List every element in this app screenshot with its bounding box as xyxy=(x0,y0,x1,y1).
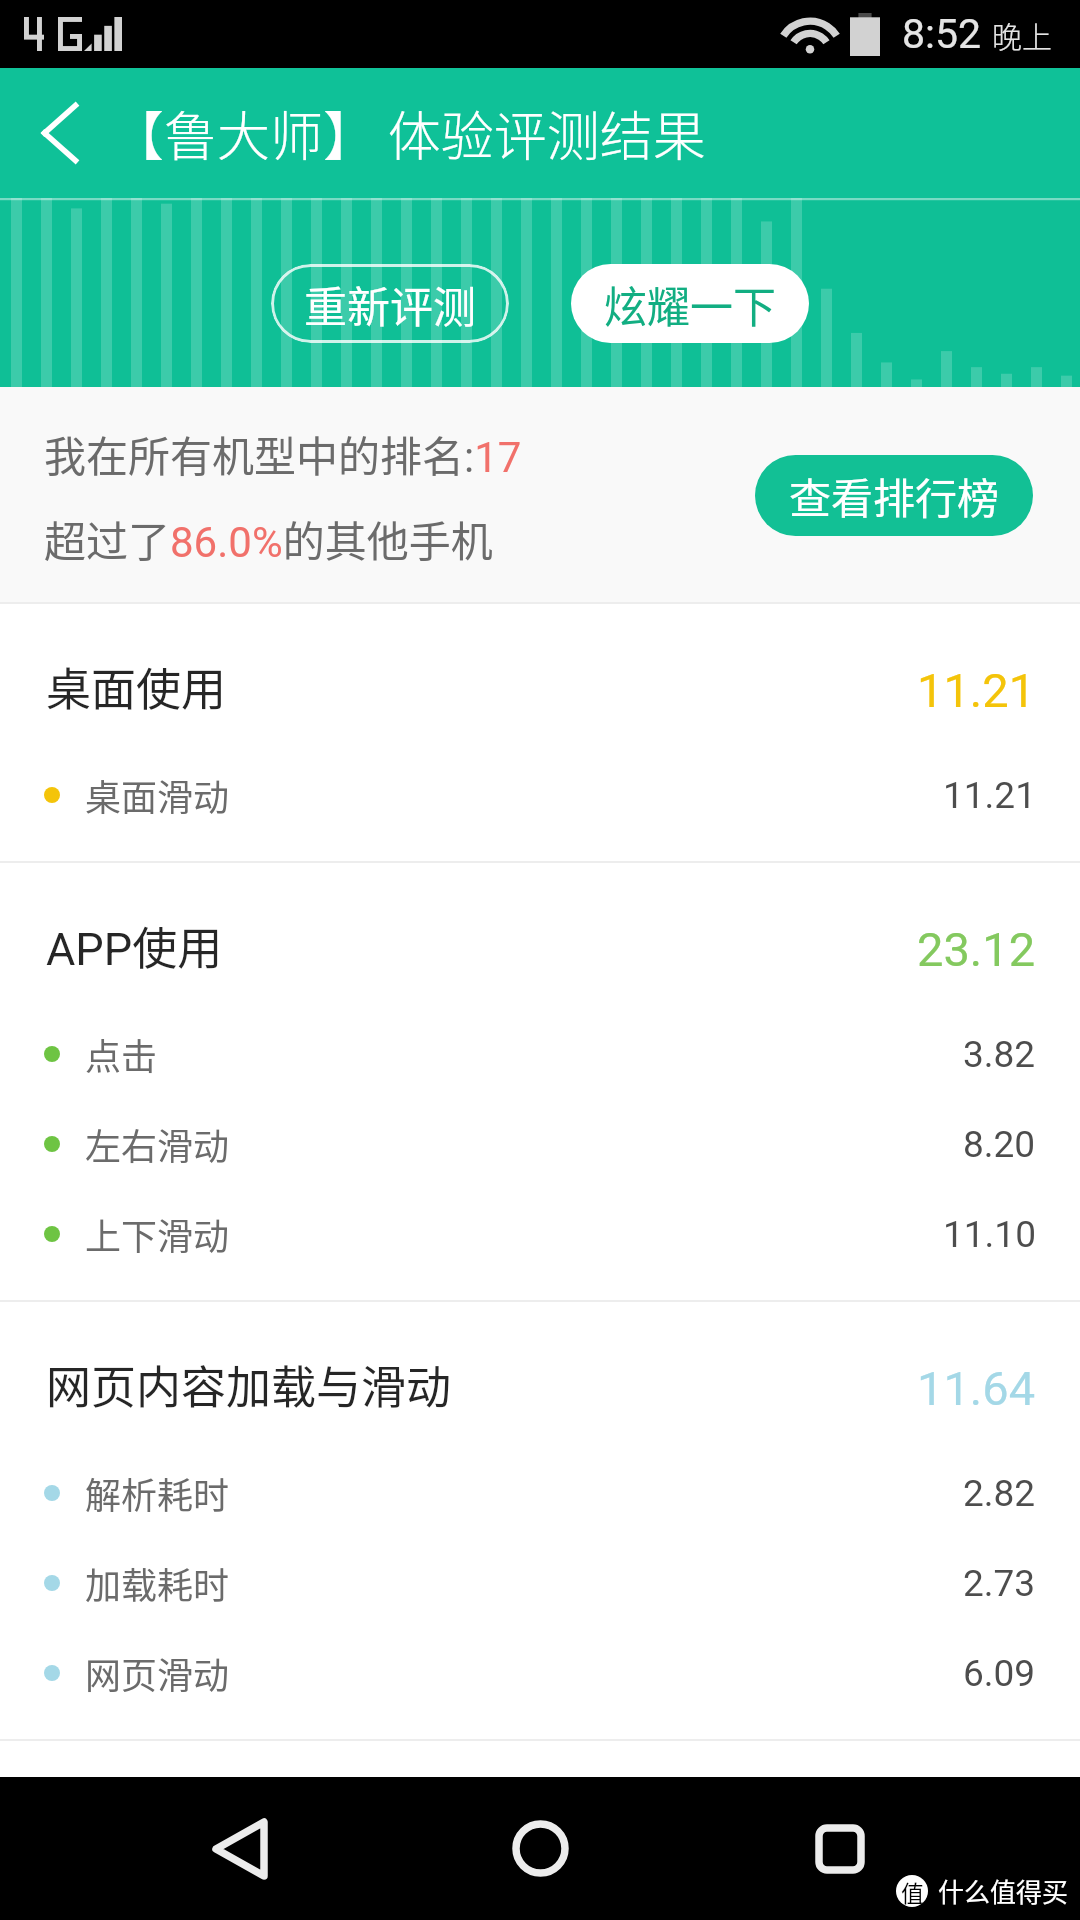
button[interactable]: 点击 xyxy=(44,1009,1036,1099)
button[interactable]: Back xyxy=(165,1777,315,1920)
staticText: 我在所有机型中的排名:17 xyxy=(44,423,522,484)
staticText: 11.10 xyxy=(943,1213,1036,1256)
staticText: 晚上 xyxy=(992,13,1052,56)
button[interactable]: 网页滑动 xyxy=(44,1628,1036,1718)
staticText: 【鲁大师】 体验评测结果 xyxy=(111,95,706,172)
staticText: 11.64 xyxy=(917,1361,1036,1416)
staticText: 3.82 xyxy=(963,1033,1036,1076)
staticText: 加载耗时 xyxy=(85,1557,230,1609)
staticText: 上下滑动 xyxy=(85,1208,230,1260)
staticText: 23.12 xyxy=(917,922,1036,977)
button[interactable]: 炫耀一下 xyxy=(571,264,809,343)
button[interactable]: 桌面使用 xyxy=(46,641,1036,731)
staticText: 网页滑动 xyxy=(85,1647,230,1699)
button[interactable]: Recent apps xyxy=(765,1777,915,1920)
staticText: 解析耗时 xyxy=(85,1467,230,1519)
staticText: 什么值得买 xyxy=(938,1872,1069,1910)
staticText: 炫耀一下 xyxy=(604,273,776,335)
staticText: 8.20 xyxy=(963,1123,1036,1166)
staticText: 桌面使用 xyxy=(46,654,227,719)
button[interactable]: 网页内容加载与滑动 xyxy=(46,1339,1036,1429)
staticText: 桌面滑动 xyxy=(85,769,230,821)
button[interactable]: 解析耗时 xyxy=(44,1448,1036,1538)
staticText: 11.21 xyxy=(943,774,1036,817)
staticText: 11.21 xyxy=(917,663,1036,718)
staticText: 点击 xyxy=(85,1028,158,1080)
staticText: 2.73 xyxy=(963,1562,1036,1605)
button[interactable]: Back xyxy=(0,68,120,198)
staticText: 6.09 xyxy=(963,1652,1036,1695)
button[interactable]: 桌面滑动 xyxy=(44,750,1036,840)
staticText: 值 xyxy=(901,1875,924,1907)
button[interactable]: 查看排行榜 xyxy=(755,455,1033,536)
staticText: 2.82 xyxy=(963,1472,1036,1515)
staticText: 超过了86.0%的其他手机 xyxy=(44,508,493,569)
staticText: 重新评测 xyxy=(304,273,476,335)
button[interactable]: 左右滑动 xyxy=(44,1099,1036,1189)
staticText: 左右滑动 xyxy=(85,1118,230,1170)
button[interactable]: 加载耗时 xyxy=(44,1538,1036,1628)
staticText: 8:52 xyxy=(902,10,982,58)
staticText: 网页内容加载与滑动 xyxy=(46,1352,452,1417)
staticText: APP使用 xyxy=(46,913,223,978)
button[interactable]: 上下滑动 xyxy=(44,1189,1036,1279)
button[interactable]: APP使用 xyxy=(46,900,1036,990)
button[interactable]: Home xyxy=(465,1777,615,1920)
staticText: 查看排行榜 xyxy=(789,465,1000,526)
button[interactable]: 重新评测 xyxy=(271,264,509,343)
